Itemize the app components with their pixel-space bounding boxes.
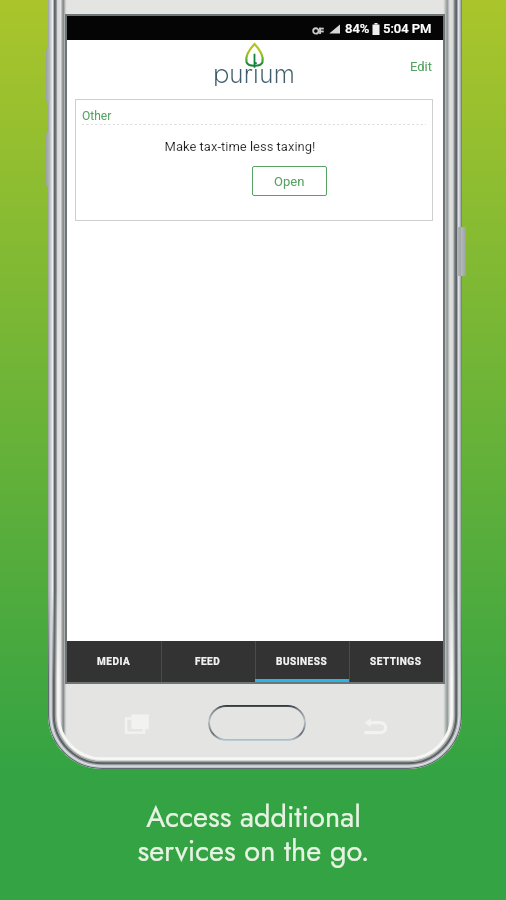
button[interactable]: BUSINESS <box>255 641 349 682</box>
staticText: 5:04 PM <box>383 21 432 36</box>
button[interactable]: Open <box>252 166 327 196</box>
button[interactable]: Recents <box>120 708 158 740</box>
staticText: Open <box>274 174 305 189</box>
staticText: Other <box>82 109 112 123</box>
button[interactable]: SETTINGS <box>349 641 443 682</box>
button[interactable]: Edit <box>402 51 441 82</box>
staticText: purium <box>213 52 295 86</box>
staticText: FEED <box>195 656 221 668</box>
staticText: SETTINGS <box>370 656 422 668</box>
staticText: Edit <box>410 59 433 74</box>
staticText: BUSINESS <box>276 656 328 668</box>
button[interactable]: MEDIA <box>67 641 161 682</box>
button[interactable]: Home <box>208 705 306 741</box>
button[interactable]: FEED <box>161 641 255 682</box>
staticText: 84% <box>345 21 370 36</box>
staticText: Access additional services on the go. <box>137 796 370 872</box>
staticText: MEDIA <box>97 656 131 668</box>
staticText: Make tax-time less taxing! <box>150 139 330 154</box>
button[interactable]: Back <box>360 712 392 740</box>
